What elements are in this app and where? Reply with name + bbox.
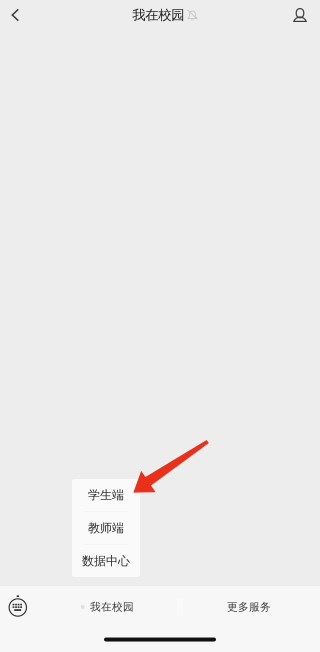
staticText: 我在校园 <box>132 7 184 23</box>
staticText: 更多服务 <box>227 600 271 613</box>
button[interactable]: Back <box>0 0 31 30</box>
staticText: 我在校园 <box>90 600 134 613</box>
button[interactable]: Contacts <box>280 0 320 30</box>
staticText: 教师端 <box>88 521 124 535</box>
staticText: 数据中心 <box>82 553 130 568</box>
button[interactable]: Keyboard <box>0 589 36 625</box>
button[interactable]: 教师端 <box>72 512 140 544</box>
button[interactable]: 更多服务 <box>208 589 290 625</box>
button[interactable]: 数据中心 <box>72 545 140 577</box>
staticText: 学生端 <box>88 488 124 502</box>
button[interactable]: 学生端 <box>72 479 140 511</box>
button[interactable]: 我在校园 <box>65 589 149 625</box>
